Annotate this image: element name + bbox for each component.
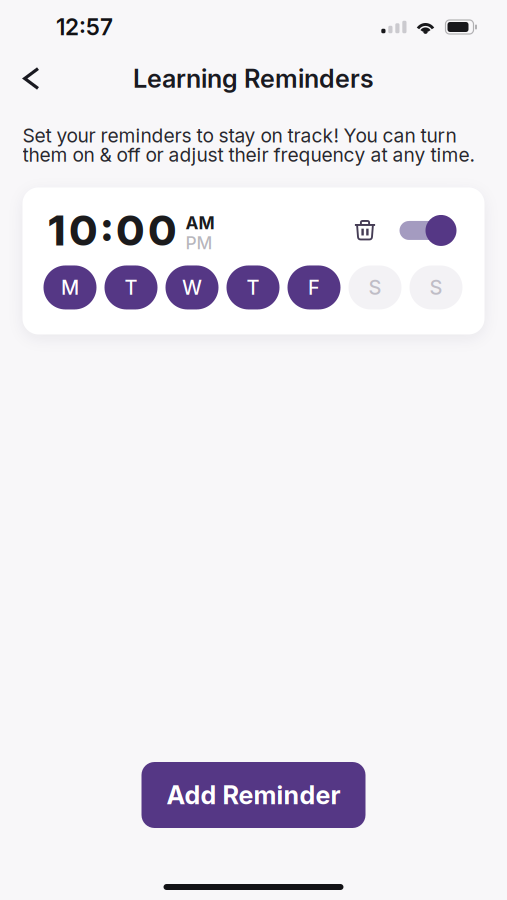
staticText: T <box>124 275 137 300</box>
staticText: them on & off or adjust their frequency … <box>22 143 475 166</box>
staticText: PM <box>185 232 212 253</box>
staticText: Add Reminder <box>166 780 340 810</box>
staticText: Learning Reminders <box>133 63 374 94</box>
button[interactable]: W <box>165 265 218 309</box>
staticText: 10:00 <box>48 205 176 255</box>
staticText: Set your reminders to stay on track! You… <box>22 124 456 147</box>
button[interactable]: S <box>409 265 462 309</box>
staticText: T <box>246 275 259 300</box>
button[interactable]: F <box>287 265 340 309</box>
button[interactable]: S <box>348 265 401 309</box>
button[interactable]: Back <box>0 56 53 100</box>
staticText: S <box>429 275 442 300</box>
button[interactable]: Add Reminder <box>141 762 365 828</box>
button[interactable]: M <box>43 265 96 309</box>
button[interactable]: T <box>104 265 157 309</box>
button[interactable]: Delete reminder <box>342 212 387 248</box>
staticText: F <box>308 275 320 300</box>
staticText: W <box>182 275 202 300</box>
staticText: 12:57 <box>56 13 113 41</box>
staticText: S <box>368 275 381 300</box>
staticText: M <box>61 275 79 300</box>
button[interactable]: Toggle reminder on <box>387 214 456 246</box>
button[interactable]: T <box>226 265 279 309</box>
staticText: AM <box>185 212 214 233</box>
